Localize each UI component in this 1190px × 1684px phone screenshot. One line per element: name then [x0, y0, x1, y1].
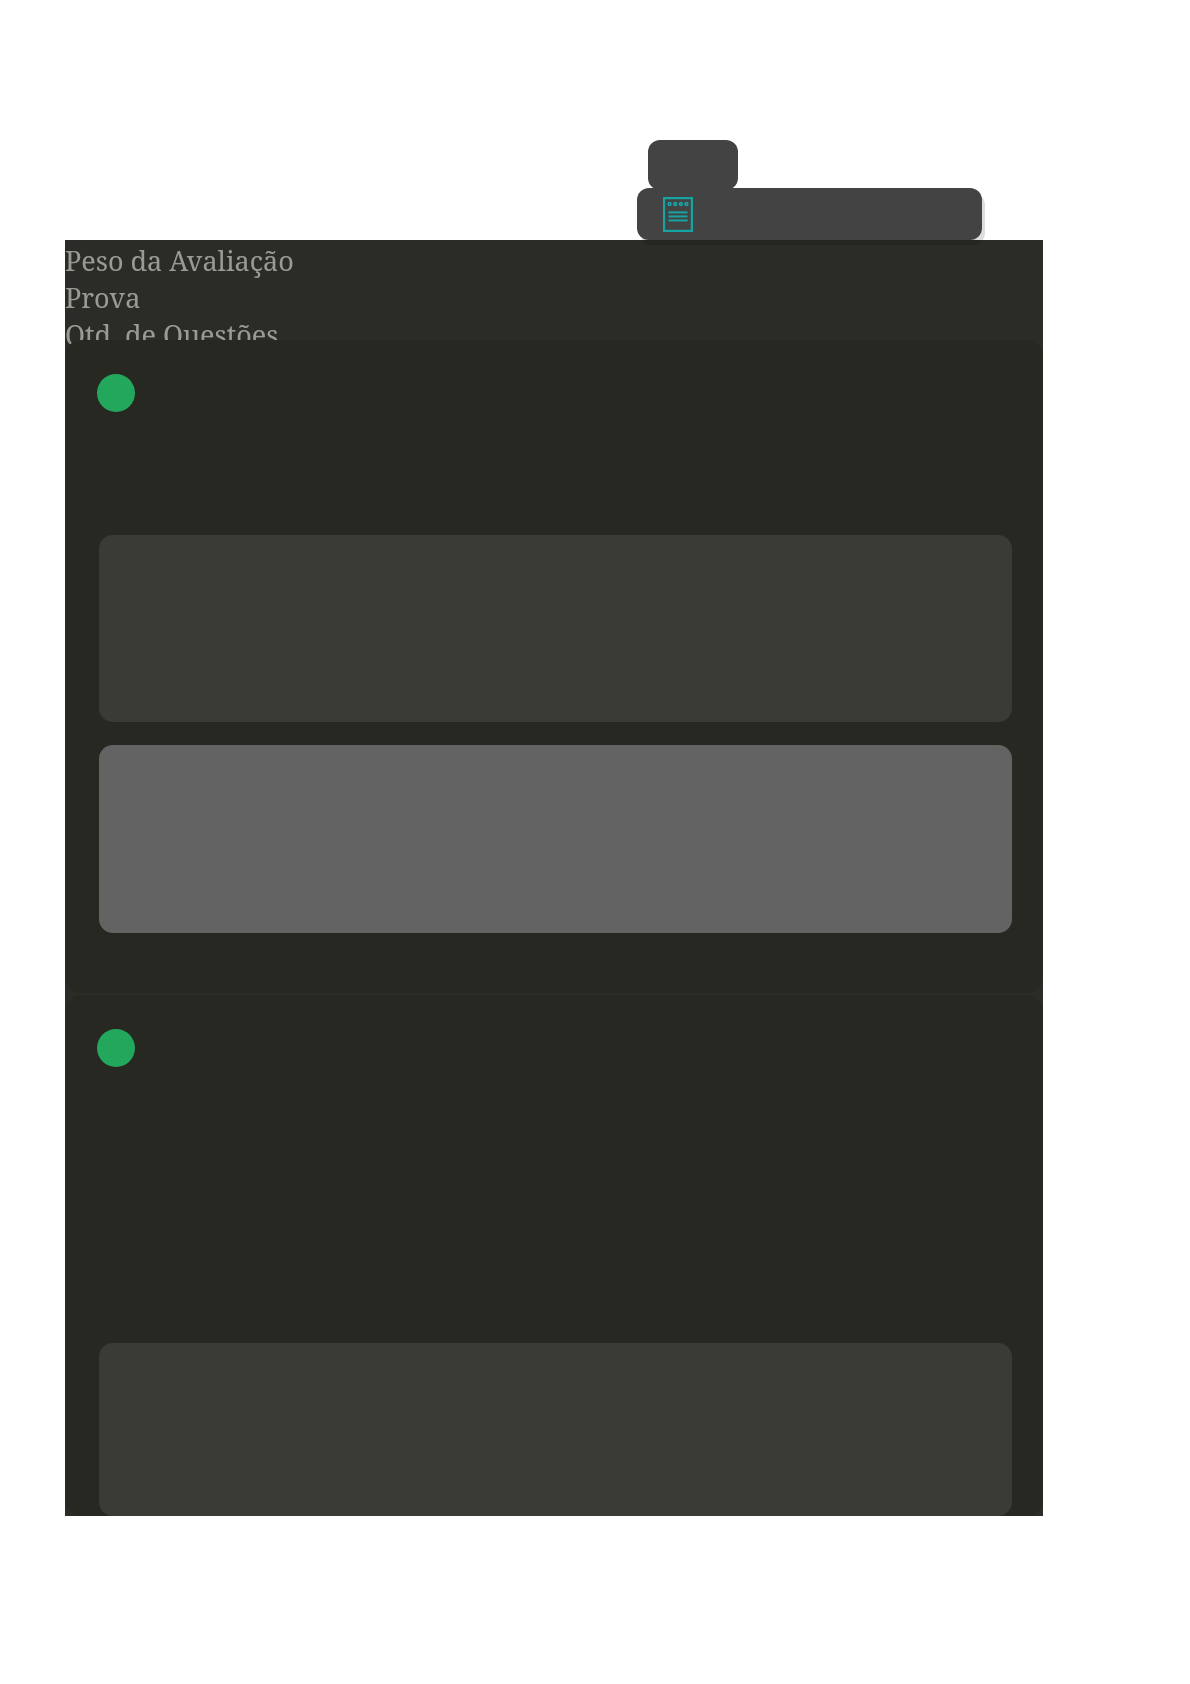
staticText: Peso da Avaliação	[65, 242, 294, 279]
button[interactable]: Notes	[663, 197, 693, 232]
button[interactable]	[65, 995, 1043, 1516]
staticText: Prova	[65, 279, 141, 316]
button[interactable]: Tab	[648, 140, 738, 190]
button[interactable]	[65, 340, 1043, 993]
staticText: Nota	[65, 353, 126, 390]
staticText: Qtd. de Questões	[65, 316, 279, 353]
